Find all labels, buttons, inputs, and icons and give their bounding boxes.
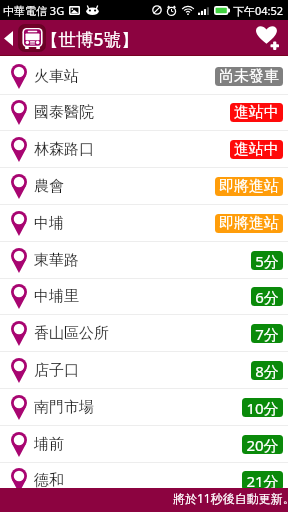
button[interactable]: 埔前 xyxy=(0,426,288,463)
staticText: 東華路 xyxy=(34,251,79,270)
button[interactable]: 中埔里 xyxy=(0,278,288,315)
staticText: 8分 xyxy=(255,361,279,380)
staticText: 中埔 xyxy=(34,214,64,233)
button[interactable]: 香山區公所 xyxy=(0,315,288,352)
button[interactable]: 國泰醫院 xyxy=(0,94,288,131)
staticText: 21分 xyxy=(246,471,279,490)
staticText: 德和 xyxy=(34,471,64,490)
staticText: 進站中 xyxy=(234,103,279,122)
button[interactable]: 東華路 xyxy=(0,242,288,279)
button[interactable]: Back xyxy=(0,20,46,56)
staticText: 農會 xyxy=(34,177,64,196)
staticText: 下午04:52 xyxy=(233,3,284,18)
staticText: 林森路口 xyxy=(34,140,94,159)
staticText: 中華電信 3G xyxy=(3,3,65,18)
button[interactable]: 林森路口 xyxy=(0,131,288,168)
staticText: 進站中 xyxy=(234,140,279,159)
staticText: 將於11秒後自動更新。 xyxy=(173,490,288,506)
button[interactable]: 中埔 xyxy=(0,205,288,242)
button[interactable]: Add to favourites xyxy=(248,20,288,56)
staticText: 5分 xyxy=(255,251,279,270)
button[interactable]: 火車站 xyxy=(0,58,288,95)
staticText: 【世博5號】 xyxy=(41,27,139,51)
button[interactable]: 南門市場 xyxy=(0,389,288,426)
button[interactable]: 德和 xyxy=(0,462,288,499)
staticText: 南門市場 xyxy=(34,398,94,417)
staticText: 國泰醫院 xyxy=(34,103,94,122)
staticText: 即將進站 xyxy=(219,177,279,196)
staticText: 尚未發車 xyxy=(219,67,279,86)
button[interactable]: 店子口 xyxy=(0,352,288,389)
staticText: 即將進站 xyxy=(219,214,279,233)
staticText: 火車站 xyxy=(34,67,79,86)
staticText: 香山區公所 xyxy=(34,324,109,343)
staticText: 6分 xyxy=(255,287,279,306)
staticText: 埔前 xyxy=(34,435,64,454)
staticText: 店子口 xyxy=(34,361,79,380)
button[interactable]: 農會 xyxy=(0,168,288,205)
staticText: 20分 xyxy=(246,435,279,454)
staticText: 7分 xyxy=(255,324,279,343)
staticText: 中埔里 xyxy=(34,287,79,306)
staticText: 10分 xyxy=(246,398,279,417)
